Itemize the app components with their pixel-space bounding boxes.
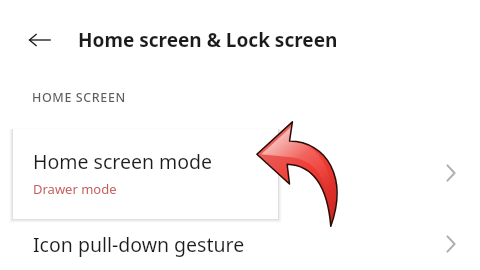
staticText: HOME SCREEN: [32, 89, 126, 106]
staticText: Home screen mode: [33, 148, 213, 175]
staticText: Home screen & Lock screen: [78, 27, 338, 53]
staticText: Icon pull-down gesture: [33, 231, 245, 258]
button[interactable]: Icon pull-down gesture: [0, 218, 480, 270]
staticText: Drawer mode: [33, 180, 117, 198]
button[interactable]: Home screen mode: [0, 128, 480, 218]
button[interactable]: Back: [20, 20, 60, 60]
